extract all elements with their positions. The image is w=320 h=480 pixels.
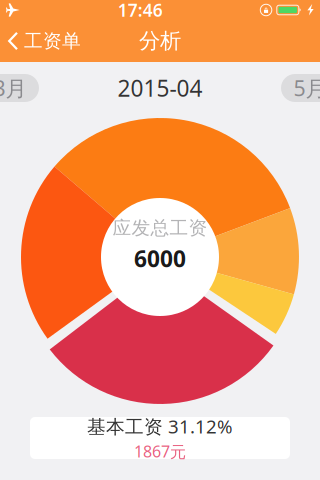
button[interactable]: 工资单 (0, 20, 91, 62)
button[interactable]: 基本工资 31.12% (30, 417, 290, 459)
button[interactable]: 3月 (0, 74, 39, 102)
staticText: 6000 (134, 243, 186, 273)
staticText: 17:46 (118, 0, 163, 21)
staticText: 1867元 (134, 441, 186, 462)
staticText: 工资单 (24, 29, 81, 52)
staticText: 3月 (0, 74, 26, 102)
staticText: 2015-04 (117, 73, 202, 103)
staticText: 基本工资 31.12% (87, 414, 233, 439)
button[interactable]: 5月 (281, 74, 320, 102)
staticText: 5月 (293, 74, 320, 102)
staticText: 应发总工资 (112, 216, 207, 239)
staticText: 分析 (139, 28, 181, 54)
